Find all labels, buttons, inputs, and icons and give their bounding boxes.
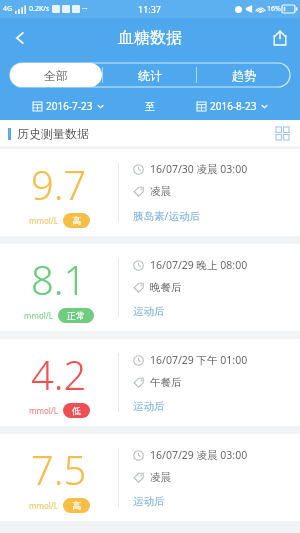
button[interactable]: 统计 xyxy=(103,63,196,87)
staticText: 4G xyxy=(3,4,13,14)
staticText: mmol/L xyxy=(24,310,54,321)
staticText: 16% xyxy=(267,4,281,14)
staticText: mmol/L xyxy=(29,500,59,511)
button[interactable]: 7.5 xyxy=(0,434,300,521)
staticText: 9.7 xyxy=(31,157,87,211)
staticText: 血糖数据 xyxy=(118,28,182,48)
staticText: 运动后 xyxy=(133,400,165,413)
staticText: 晚餐后 xyxy=(150,281,182,294)
button[interactable]: 全部 xyxy=(10,63,102,87)
staticText: 高 xyxy=(72,215,81,226)
staticText: 高 xyxy=(72,500,81,511)
button[interactable]: Grid view xyxy=(272,123,292,143)
staticText: 低 xyxy=(72,405,81,416)
button[interactable]: 趋势 xyxy=(197,63,290,87)
staticText: 凌晨 xyxy=(150,471,171,484)
staticText: 11:37 xyxy=(138,3,162,15)
staticText: 0.2K/s xyxy=(29,4,50,14)
staticText: 趋势 xyxy=(232,68,256,83)
staticText: 运动后 xyxy=(133,305,165,318)
staticText: 全部 xyxy=(44,68,68,83)
button[interactable]: Back xyxy=(0,18,40,58)
staticText: 2016-8-23 xyxy=(210,99,257,113)
staticText: 历史测量数据 xyxy=(17,126,89,141)
staticText: 运动后 xyxy=(133,495,165,508)
staticText: mmol/L xyxy=(29,215,59,226)
staticText: 16/07/29 下午 01:00 xyxy=(150,353,248,367)
staticText: mmol/L xyxy=(29,405,59,416)
staticText: 至 xyxy=(136,100,164,113)
staticText: 16/07/29 凌晨 03:00 xyxy=(150,448,248,462)
staticText: 凌晨 xyxy=(150,185,171,198)
staticText: 8.1 xyxy=(31,252,87,306)
staticText: 4.2 xyxy=(31,347,87,401)
button[interactable]: 8.1 xyxy=(0,244,300,331)
staticText: 16/07/30 凌晨 03:00 xyxy=(150,162,248,176)
button[interactable]: 4.2 xyxy=(0,339,300,426)
staticText: 午餐后 xyxy=(150,376,182,389)
staticText: ··· xyxy=(82,4,88,14)
staticText: 7.5 xyxy=(31,442,87,496)
button[interactable]: Share xyxy=(260,18,300,58)
staticText: 2016-7-23 xyxy=(46,99,93,113)
staticText: 统计 xyxy=(138,68,162,83)
staticText: 胰岛素/运动后 xyxy=(133,209,200,223)
button[interactable]: 2016-8-23 xyxy=(164,92,300,120)
button[interactable]: 9.7 xyxy=(0,149,300,236)
staticText: 正常 xyxy=(67,310,85,321)
staticText: 16/07/29 晚上 08:00 xyxy=(150,258,248,272)
button[interactable]: 2016-7-23 xyxy=(0,92,136,120)
